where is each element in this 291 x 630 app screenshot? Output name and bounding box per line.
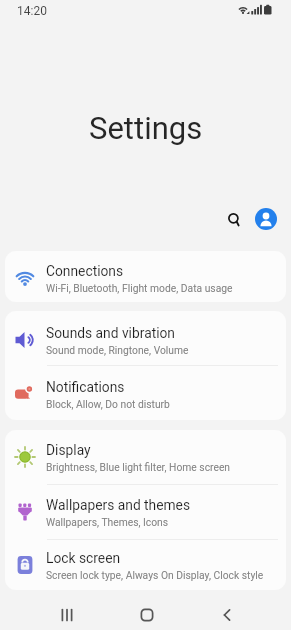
staticText: Wi-Fi, Bluetooth, Flight mode, Data usag… xyxy=(46,282,233,294)
staticText: Sound mode, Ringtone, Volume xyxy=(46,344,189,356)
button[interactable] xyxy=(187,599,267,630)
button[interactable] xyxy=(220,206,246,232)
button[interactable] xyxy=(107,599,187,630)
staticText: Notifications xyxy=(46,379,125,395)
staticText: Connections xyxy=(46,263,124,279)
button[interactable] xyxy=(255,208,277,230)
button[interactable]: Sounds and vibration xyxy=(5,311,286,365)
button[interactable]: Lock screen xyxy=(5,540,286,590)
button[interactable]: Display xyxy=(5,430,286,484)
staticText: Brightness, Blue light filter, Home scre… xyxy=(46,461,231,473)
staticText: Wallpapers, Themes, Icons xyxy=(46,516,169,528)
staticText: Wallpapers and themes xyxy=(46,497,191,513)
button[interactable]: Wallpapers and themes xyxy=(5,485,286,539)
button[interactable]: Connections xyxy=(5,251,286,302)
staticText: Lock screen xyxy=(46,550,121,566)
staticText: Display xyxy=(46,442,91,458)
staticText: 14:20 xyxy=(17,4,47,18)
staticText: Settings xyxy=(89,110,203,146)
staticText: Sounds and vibration xyxy=(46,325,175,341)
staticText: Block, Allow, Do not disturb xyxy=(46,398,170,410)
button[interactable]: Notifications xyxy=(5,366,286,420)
staticText: Screen lock type, Always On Display, Clo… xyxy=(46,569,264,581)
button[interactable] xyxy=(27,599,107,630)
